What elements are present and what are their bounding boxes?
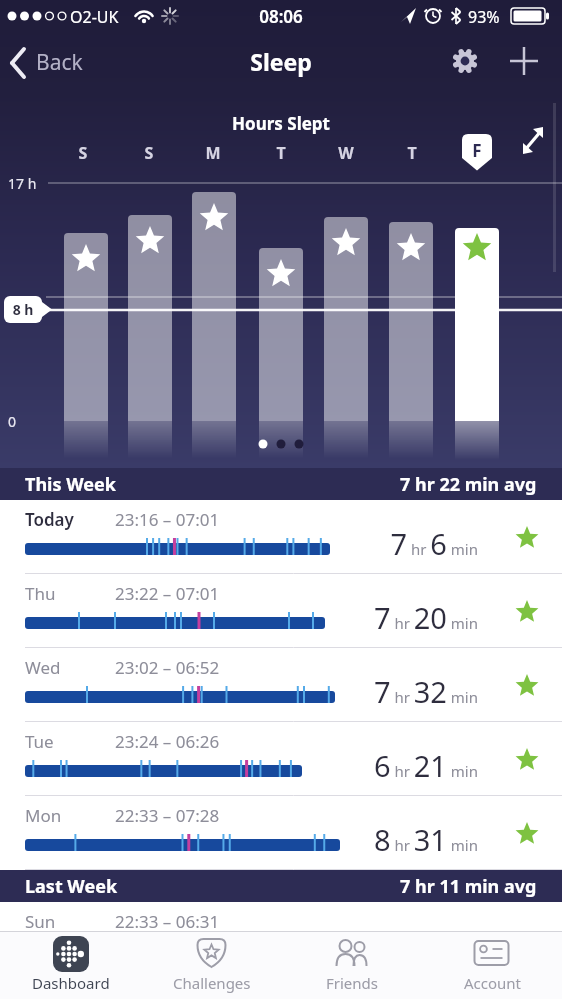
staticText: Sun: [25, 910, 56, 933]
staticText: W: [336, 142, 356, 164]
staticText: 22:33 – 07:28: [115, 804, 220, 827]
button[interactable]: Mon: [0, 796, 562, 870]
button[interactable]: [502, 40, 546, 84]
staticText: F: [467, 139, 487, 162]
staticText: Thu: [25, 582, 56, 605]
staticText: 6 hr 21 min: [320, 746, 478, 785]
button[interactable]: Back: [0, 40, 110, 86]
staticText: T: [402, 142, 422, 164]
button[interactable]: Tue: [0, 722, 562, 796]
staticText: Dashboard: [32, 973, 110, 993]
staticText: 17 h: [8, 174, 37, 193]
staticText: 7 hr 22 min avg: [400, 472, 537, 497]
staticText: 22:33 – 06:31: [115, 910, 220, 933]
staticText: Tue: [25, 730, 54, 753]
staticText: 23:16 – 07:01: [115, 508, 220, 531]
staticText: T: [271, 142, 291, 164]
staticText: 08:06: [0, 5, 562, 28]
staticText: 93%: [468, 6, 500, 28]
button[interactable]: [443, 40, 487, 84]
staticText: Challenges: [173, 973, 251, 993]
staticText: O2-UK: [70, 6, 119, 28]
button[interactable]: Sun: [0, 902, 562, 931]
staticText: 0: [8, 412, 17, 431]
staticText: Today: [25, 508, 74, 531]
staticText: S: [139, 142, 159, 164]
button[interactable]: [510, 118, 554, 162]
staticText: Last Week: [25, 874, 118, 899]
staticText: Account: [464, 973, 522, 993]
staticText: S: [73, 142, 93, 164]
staticText: M: [203, 142, 223, 164]
button[interactable]: Dashboard: [0, 931, 141, 999]
staticText: 7 hr 11 min avg: [400, 874, 537, 899]
button[interactable]: Challenges: [141, 931, 282, 999]
staticText: 7 hr 32 min: [320, 672, 478, 711]
button[interactable]: Thu: [0, 574, 562, 648]
staticText: Hours Slept: [0, 112, 562, 135]
staticText: 7 hr 20 min: [320, 598, 478, 637]
staticText: 7 hr 6 min: [320, 524, 478, 563]
button[interactable]: Wed: [0, 648, 562, 722]
staticText: 23:22 – 07:01: [115, 582, 220, 605]
staticText: Back: [36, 48, 83, 77]
button[interactable]: Today: [0, 500, 562, 574]
button[interactable]: Account: [422, 931, 562, 999]
staticText: 8 hr 31 min: [320, 820, 478, 859]
staticText: This Week: [25, 472, 116, 497]
staticText: 23:24 – 06:26: [115, 730, 220, 753]
staticText: 23:02 – 06:52: [115, 656, 220, 679]
staticText: Mon: [25, 804, 62, 827]
staticText: 8 h: [6, 300, 40, 319]
staticText: Sleep: [0, 46, 562, 77]
button[interactable]: Friends: [281, 931, 422, 999]
staticText: Wed: [25, 656, 61, 679]
staticText: Friends: [326, 973, 378, 993]
